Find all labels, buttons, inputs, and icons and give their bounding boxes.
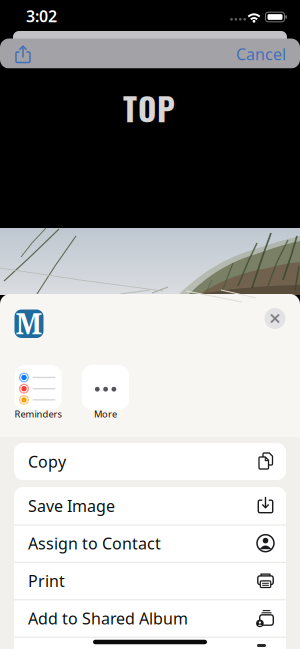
staticText: Copy bbox=[28, 451, 66, 472]
staticText: 3:02 bbox=[26, 5, 57, 27]
staticText: Cancel bbox=[236, 43, 286, 65]
button[interactable]: Reminders bbox=[7, 365, 69, 421]
staticText: Assign to Contact bbox=[28, 533, 161, 554]
button[interactable]: Copy bbox=[0, 0, 272, 37]
staticText: Add to Shared Album bbox=[28, 608, 188, 629]
button[interactable]: Save Image bbox=[0, 0, 272, 37]
staticText: M bbox=[15, 304, 42, 342]
button[interactable]: Cancel bbox=[229, 40, 293, 68]
button[interactable]: Share bbox=[9, 40, 37, 68]
staticText: Save Image bbox=[28, 495, 115, 516]
staticText: Print bbox=[28, 570, 65, 591]
staticText: TOP bbox=[123, 85, 175, 131]
staticText: Reminders bbox=[14, 408, 61, 420]
staticText: More bbox=[94, 408, 117, 420]
button[interactable]: Add to Shared Album bbox=[0, 0, 272, 37]
button[interactable]: Assign to Contact bbox=[0, 0, 272, 37]
button[interactable]: Print bbox=[0, 0, 272, 37]
button[interactable]: More bbox=[74, 365, 136, 421]
